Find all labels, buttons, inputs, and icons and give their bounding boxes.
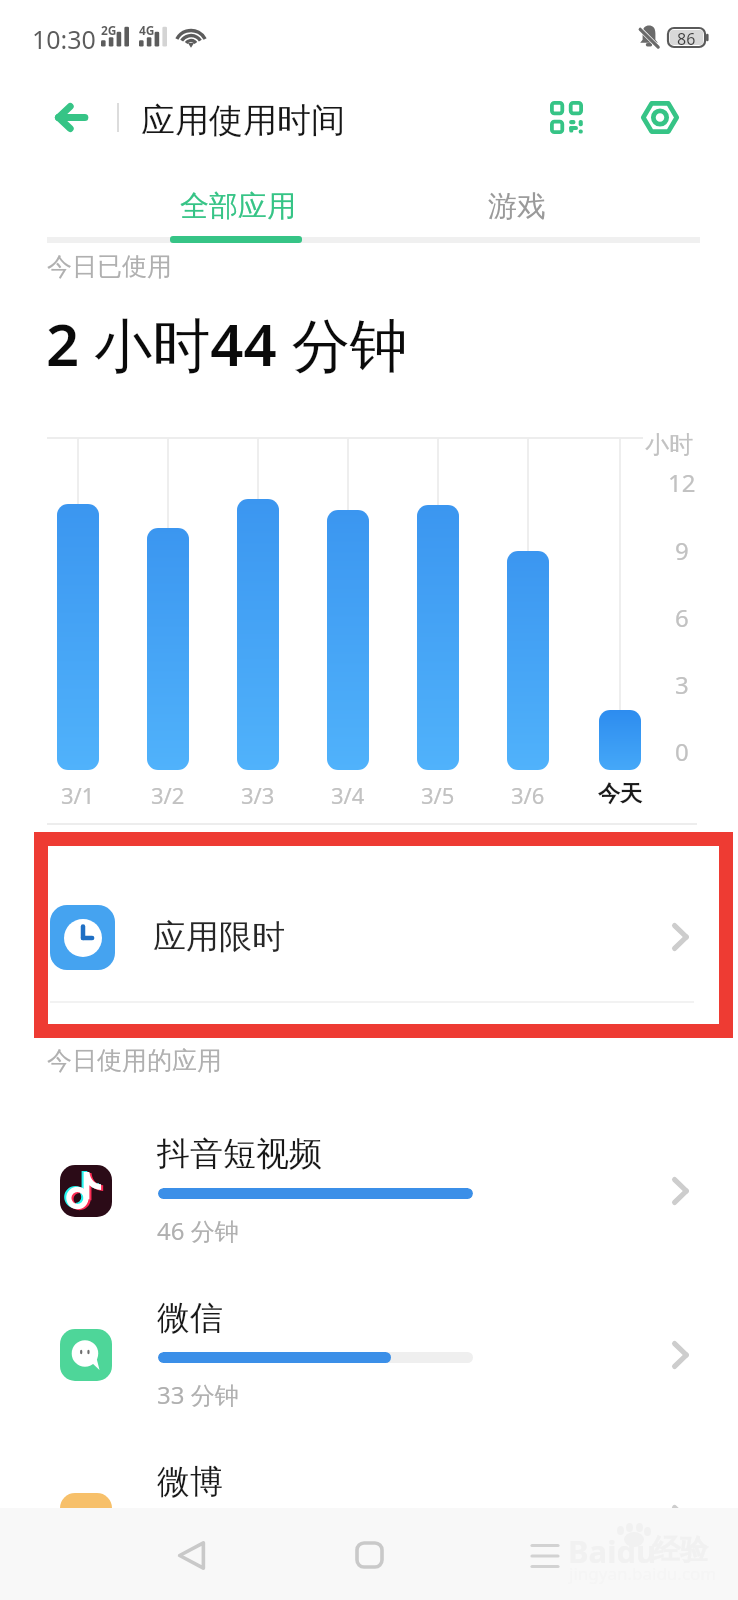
- button[interactable]: 抖音短视频: [0, 1109, 738, 1273]
- staticText: 今日已使用: [47, 251, 172, 282]
- button[interactable]: Home: [329, 1515, 409, 1595]
- staticText: 应用限时: [153, 916, 285, 958]
- staticText: 6: [675, 601, 689, 634]
- staticText: 46 分钟: [157, 1214, 239, 1247]
- staticText: 12: [668, 466, 696, 499]
- staticText: 微博: [157, 1461, 223, 1503]
- staticText: 3/2: [151, 780, 185, 810]
- button[interactable]: 微博: [0, 1437, 738, 1600]
- staticText: 3/6: [511, 780, 545, 810]
- staticText: 3/4: [331, 780, 365, 810]
- staticText: 3/5: [421, 780, 455, 810]
- staticText: 4G: [139, 22, 155, 38]
- staticText: 86: [677, 28, 696, 49]
- staticText: 3/1: [61, 780, 95, 810]
- button[interactable]: 全部应用: [112, 170, 364, 242]
- staticText: 应用使用时间: [141, 99, 345, 142]
- button[interactable]: Recent apps: [505, 1515, 585, 1595]
- button[interactable]: Scan QR code: [531, 82, 601, 152]
- staticText: 0: [675, 735, 689, 768]
- button[interactable]: 应用限时: [0, 864, 738, 1010]
- staticText: 微信: [157, 1297, 223, 1339]
- staticText: 2 小时44 分钟: [46, 304, 408, 383]
- staticText: 3: [675, 668, 689, 701]
- button[interactable]: 微信: [0, 1273, 738, 1437]
- button[interactable]: Back: [151, 1515, 231, 1595]
- staticText: 3/3: [241, 780, 275, 810]
- staticText: 2G: [101, 22, 117, 38]
- staticText: 今天: [598, 780, 642, 808]
- staticText: 经验: [652, 1532, 708, 1567]
- staticText: 抖音短视频: [157, 1133, 322, 1175]
- staticText: 9: [675, 534, 689, 567]
- staticText: 10:30: [32, 22, 96, 56]
- button[interactable]: 游戏: [391, 170, 643, 242]
- staticText: 游戏: [488, 188, 546, 225]
- button[interactable]: Settings: [625, 82, 695, 152]
- staticText: 全部应用: [180, 188, 296, 225]
- staticText: Baidu: [568, 1530, 657, 1572]
- staticText: 33 分钟: [157, 1378, 239, 1411]
- button[interactable]: Back: [37, 83, 105, 151]
- staticText: 小时: [645, 430, 693, 460]
- staticText: 今日使用的应用: [47, 1045, 222, 1076]
